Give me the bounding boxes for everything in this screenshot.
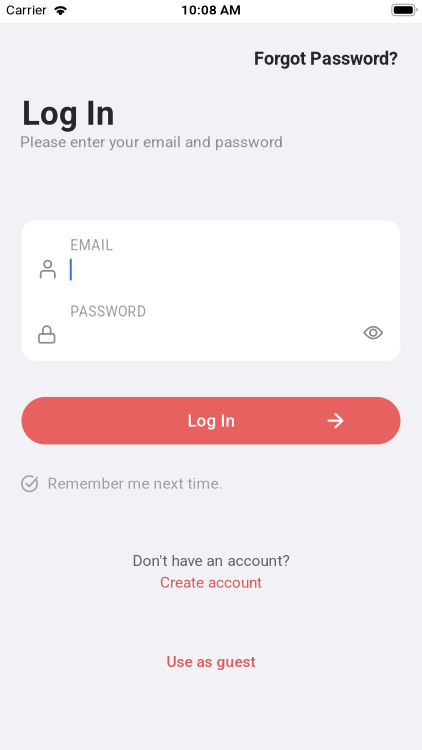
staticText: Don't have an account?	[132, 552, 289, 570]
button[interactable]: Create account	[160, 574, 262, 591]
staticText: Forgot Password?	[254, 48, 398, 69]
staticText: Remember me next time.	[47, 474, 222, 493]
staticText: Please enter your email and password	[20, 133, 283, 151]
button[interactable]: Remember me next time.	[21, 474, 222, 493]
staticText: PASSWORD	[70, 304, 146, 320]
button[interactable]: Show password	[363, 325, 383, 341]
staticText: 10:08 AM	[181, 2, 241, 18]
staticText: Carrier	[6, 2, 47, 18]
staticText: Log In	[187, 411, 234, 431]
staticText: Create account	[160, 574, 262, 591]
staticText: EMAIL	[70, 237, 112, 254]
button[interactable]: Forgot Password?	[254, 48, 398, 69]
button[interactable]: Log In	[21, 397, 400, 444]
staticText: Use as guest	[166, 653, 255, 671]
staticText: Log In	[22, 94, 114, 133]
button[interactable]: Use as guest	[166, 653, 255, 671]
